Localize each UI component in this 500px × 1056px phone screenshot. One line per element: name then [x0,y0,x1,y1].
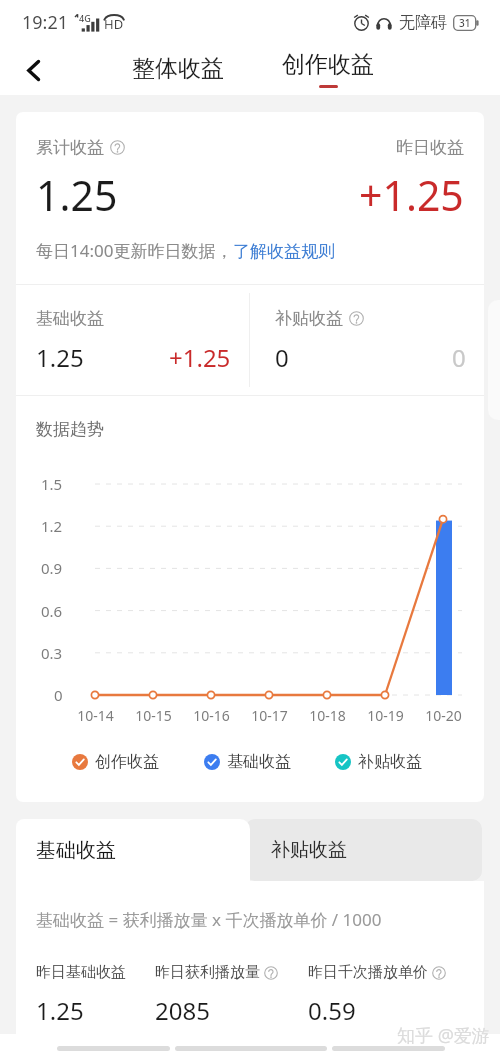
staticText: 1.25 [36,341,84,374]
staticText: 10-18 [309,706,346,725]
staticText: 数据趋势 [36,419,104,440]
staticText: 1.2 [41,516,63,536]
staticText: 整体收益 [132,54,224,83]
staticText: 10-19 [367,706,404,725]
staticText: 知乎 @爱游 [397,1023,490,1048]
staticText: 1.25 [36,167,118,223]
staticText: 昨日获利播放量 [155,963,260,982]
staticText: 1.5 [41,474,63,494]
staticText: 创作收益 [95,752,159,772]
button[interactable]: 创作收益 [268,48,388,90]
staticText: 了解收益规则 [233,241,335,262]
staticText: 10-20 [425,706,462,725]
button[interactable]: Back [12,49,54,91]
staticText: 2085 [155,994,210,1027]
button[interactable]: 了解收益规则 [233,241,335,262]
staticText: 基础收益 [227,752,291,772]
staticText: 0.6 [41,601,63,621]
staticText: 补贴收益 [358,752,422,772]
staticText: HD [104,15,124,33]
staticText: 0.59 [308,994,356,1027]
staticText: 0 [275,341,289,374]
staticText: 累计收益 [36,137,104,158]
staticText: 10-17 [251,706,288,725]
staticText: 昨日千次播放单价 [308,963,428,982]
staticText: 31 [459,16,471,30]
button[interactable]: 基础收益 [16,819,250,881]
button[interactable]: 基础收益 [204,752,291,772]
staticText: 1.25 [36,994,84,1027]
button[interactable]: 补贴收益 [335,752,422,772]
staticText: 10-16 [193,706,230,725]
staticText: 19:21 [22,10,69,35]
button[interactable]: 补贴收益 [245,819,482,881]
staticText: 每日14:00更新昨日数据， [36,239,233,262]
staticText: +1.25 [169,341,231,374]
staticText: 创作收益 [282,50,374,79]
staticText: 0 [54,685,63,705]
staticText: 4G [79,12,91,24]
staticText: 10-15 [135,706,172,725]
staticText: 昨日基础收益 [36,963,126,982]
staticText: 补贴收益 [275,308,343,329]
staticText: +1.25 [359,167,464,223]
button[interactable]: 创作收益 [72,752,159,772]
staticText: 昨日收益 [396,137,464,158]
staticText: 0.9 [41,558,63,578]
staticText: 0 [452,341,466,374]
staticText: 0.3 [41,643,63,663]
staticText: 基础收益 [36,308,104,329]
staticText: 补贴收益 [271,838,347,862]
staticText: 无障碍 [399,13,447,33]
staticText: 基础收益 [36,838,116,863]
button[interactable]: 整体收益 [118,46,238,91]
staticText: 基础收益 = 获利播放量 x 千次播放单价 / 1000 [36,908,382,931]
staticText: 10-14 [77,706,114,725]
